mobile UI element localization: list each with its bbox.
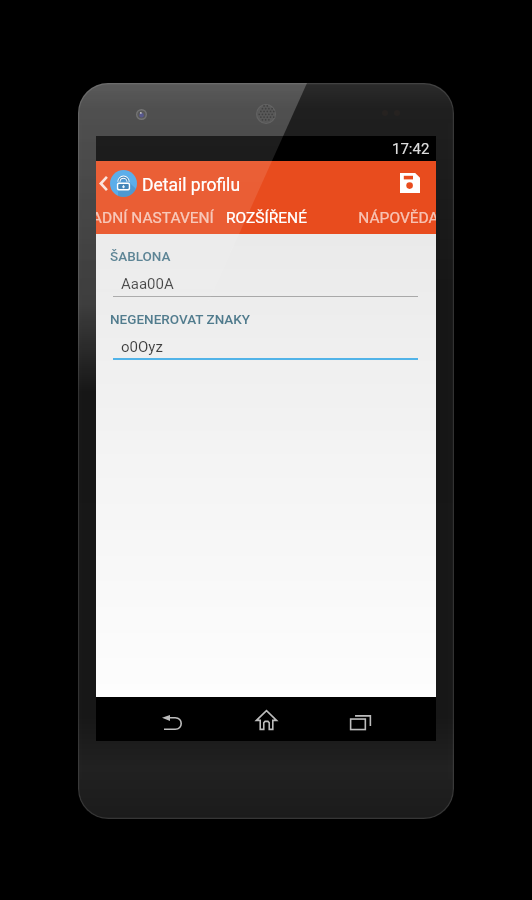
staticText: NÁPOVĚDA <box>358 209 436 227</box>
staticText: ZÁKLADNÍ NASTAVENÍ <box>96 209 214 227</box>
button[interactable]: NEGENEROVAT ZNAKY <box>96 307 436 365</box>
button[interactable]: Recent apps <box>313 697 408 741</box>
staticText: Detail profilu <box>142 175 241 196</box>
staticText: o0Oyz <box>121 338 163 356</box>
button[interactable]: Save <box>391 164 428 201</box>
button[interactable]: ROZŠÍŘENÉ <box>200 198 332 234</box>
staticText: 17:42 <box>392 140 430 158</box>
staticText: ROZŠÍŘENÉ <box>226 209 307 227</box>
staticText: Aaa00A <box>121 275 174 293</box>
button[interactable]: Home <box>219 697 314 741</box>
button[interactable]: Back <box>124 697 219 741</box>
staticText: NEGENEROVAT ZNAKY <box>110 311 251 327</box>
button[interactable]: Navigate up <box>97 170 137 197</box>
button[interactable]: ŠABLONA <box>96 244 436 302</box>
staticText: ŠABLONA <box>110 248 171 264</box>
button[interactable]: NÁPOVĚDA <box>332 198 436 234</box>
button[interactable]: ZÁKLADNÍ NASTAVENÍ <box>96 198 200 234</box>
